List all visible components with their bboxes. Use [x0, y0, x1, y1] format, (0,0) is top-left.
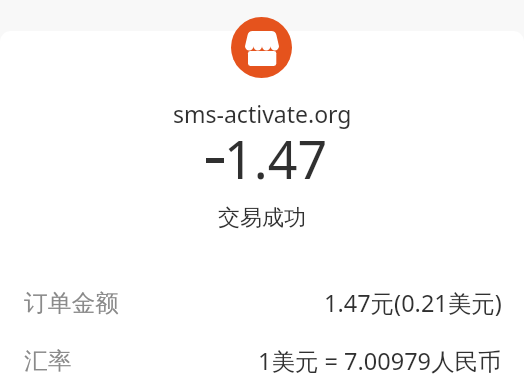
button[interactable]: Merchant store — [231, 17, 292, 78]
staticText: 交易成功 — [218, 204, 306, 232]
staticText: 汇率 — [24, 346, 72, 376]
staticText: 订单金额 — [24, 288, 119, 318]
staticText: 1.47元(0.21美元) — [324, 287, 502, 319]
staticText: sms-activate.org — [173, 98, 352, 129]
staticText: 1.47 — [224, 123, 328, 194]
staticText: 1美元 = 7.00979人民币 — [258, 345, 502, 377]
button[interactable]: 订单金额 — [0, 286, 524, 320]
button[interactable]: 汇率 — [0, 344, 524, 378]
